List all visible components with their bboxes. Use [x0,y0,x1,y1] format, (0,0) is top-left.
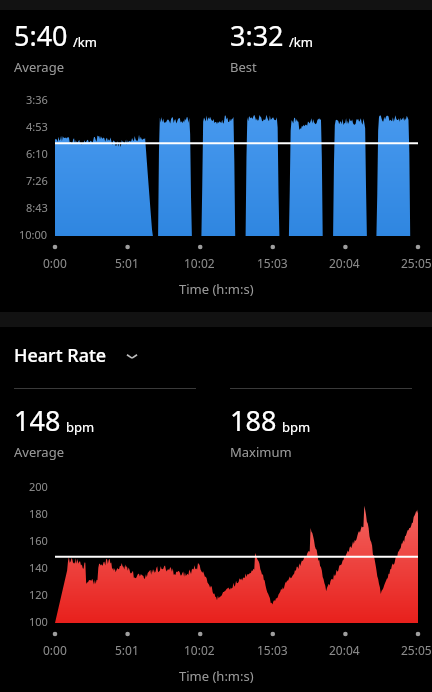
staticText: 200 [29,479,48,494]
button[interactable]: Heart Rate [0,343,432,368]
staticText: 15:03 [257,255,288,271]
staticText: Heart Rate [14,343,107,368]
staticText: 0:00 [43,642,67,658]
staticText: 180 [29,506,48,521]
staticText: 15:03 [257,642,288,658]
staticText: 20:04 [329,642,360,658]
staticText: 5:40 [14,17,68,54]
staticText: Time (h:m:s) [179,667,254,685]
staticText: 100 [29,614,48,629]
staticText: 6:10 [26,146,48,161]
staticText: Average [14,58,64,76]
staticText: 10:02 [184,642,215,658]
staticText: /km [289,33,313,51]
staticText: 5:01 [115,255,139,271]
staticText: bpm [282,418,311,436]
staticText: 25:05 [401,642,432,658]
staticText: 10:00 [19,227,48,242]
staticText: 3:36 [26,92,48,107]
staticText: 160 [29,533,48,548]
staticText: 188 [230,402,277,439]
staticText: 3:32 [230,17,284,54]
staticText: 20:04 [329,255,360,271]
staticText: 148 [14,402,61,439]
staticText: 8:43 [26,200,48,215]
staticText: /km [73,33,97,51]
staticText: 140 [29,560,48,575]
button[interactable]: 5:40 [0,17,216,76]
staticText: Maximum [230,443,292,461]
staticText: 7:26 [26,173,48,188]
other: Expand Heart Rate [123,347,141,365]
staticText: 10:02 [184,255,215,271]
button[interactable]: 188 [216,388,432,461]
staticText: 25:05 [401,255,432,271]
staticText: 120 [29,587,48,602]
staticText: Average [14,443,64,461]
staticText: 4:53 [26,119,48,134]
staticText: 5:01 [115,642,139,658]
staticText: bpm [66,418,95,436]
staticText: 0:00 [43,255,67,271]
staticText: Time (h:m:s) [179,280,254,298]
staticText: Best [230,58,257,76]
button[interactable]: 148 [0,388,216,461]
button[interactable]: 3:32 [216,17,432,76]
